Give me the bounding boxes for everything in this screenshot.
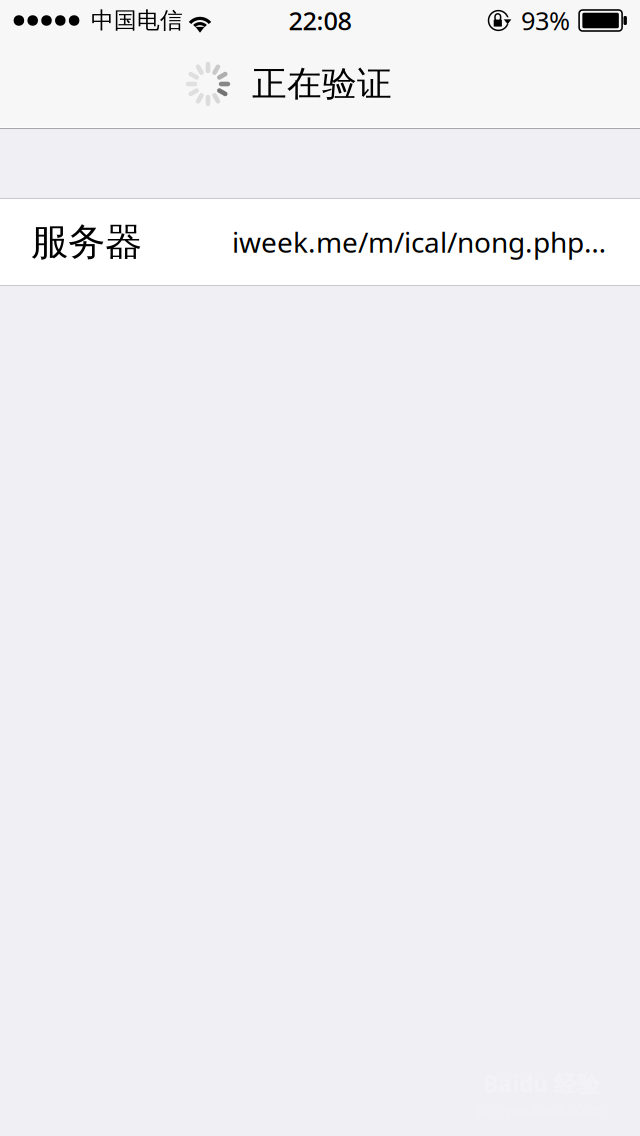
staticText: 93%: [521, 4, 570, 37]
staticText: 服务器: [31, 219, 142, 265]
staticText: 中国电信: [91, 7, 183, 34]
staticText: 正在验证: [252, 63, 392, 105]
staticText: 22:08: [288, 4, 351, 37]
button[interactable]: 服务器: [0, 199, 640, 285]
staticText: iweek.me/m/ical/nong.php…: [232, 223, 606, 261]
